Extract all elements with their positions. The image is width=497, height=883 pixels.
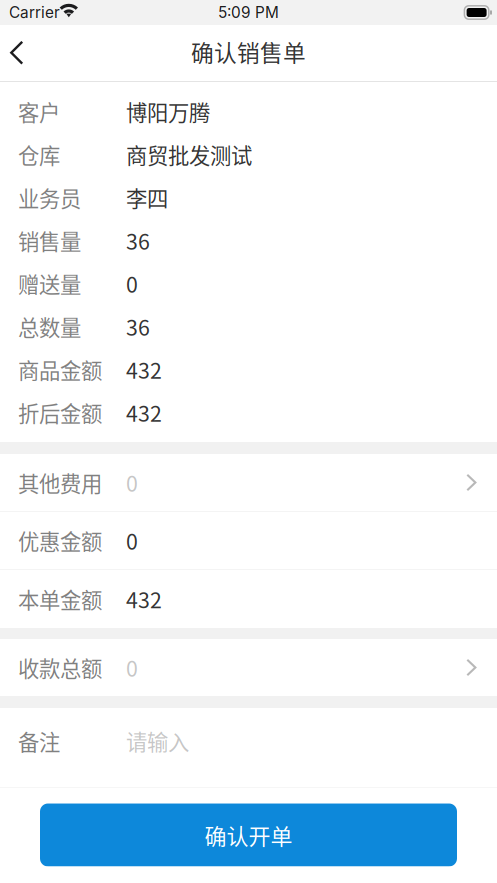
staticText: 销售量 — [18, 225, 81, 256]
staticText: 0 — [126, 268, 138, 299]
staticText: 0 — [126, 652, 138, 683]
staticText: 业务员 — [18, 182, 81, 213]
staticText: 商贸批发测试 — [126, 139, 252, 170]
staticText: 432 — [126, 584, 162, 614]
staticText: 36 — [126, 225, 150, 256]
staticText: 总数量 — [18, 311, 81, 342]
staticText: 36 — [126, 311, 150, 342]
staticText: 0 — [126, 467, 138, 498]
staticText: 432 — [126, 397, 162, 428]
staticText: 本单金额 — [18, 584, 102, 614]
button[interactable]: Back — [0, 25, 40, 81]
staticText: 博阳万腾 — [126, 96, 210, 127]
staticText: 客户 — [18, 96, 60, 127]
staticText: 收款总额 — [18, 652, 102, 683]
staticText: 确认销售单 — [191, 35, 306, 68]
button[interactable]: 收款总额 — [0, 639, 497, 696]
staticText: 赠送量 — [18, 268, 81, 299]
staticText: 请输入 — [126, 726, 189, 756]
staticText: Carrier — [9, 3, 60, 22]
staticText: 确认开单 — [204, 819, 292, 851]
staticText: 李四 — [126, 182, 168, 213]
staticText: 其他费用 — [18, 467, 102, 498]
staticText: 商品金额 — [18, 354, 102, 385]
staticText: 432 — [126, 354, 162, 385]
button[interactable]: 确认开单 — [40, 803, 457, 866]
staticText: 折后金额 — [18, 397, 102, 428]
staticText: 5:09 PM — [218, 3, 279, 22]
staticText: 仓库 — [18, 139, 60, 170]
staticText: 优惠金额 — [18, 525, 102, 556]
button[interactable]: 其他费用 — [0, 454, 497, 511]
staticText: 0 — [126, 525, 138, 556]
button[interactable]: 备注 — [0, 708, 497, 787]
staticText: 备注 — [18, 726, 60, 756]
